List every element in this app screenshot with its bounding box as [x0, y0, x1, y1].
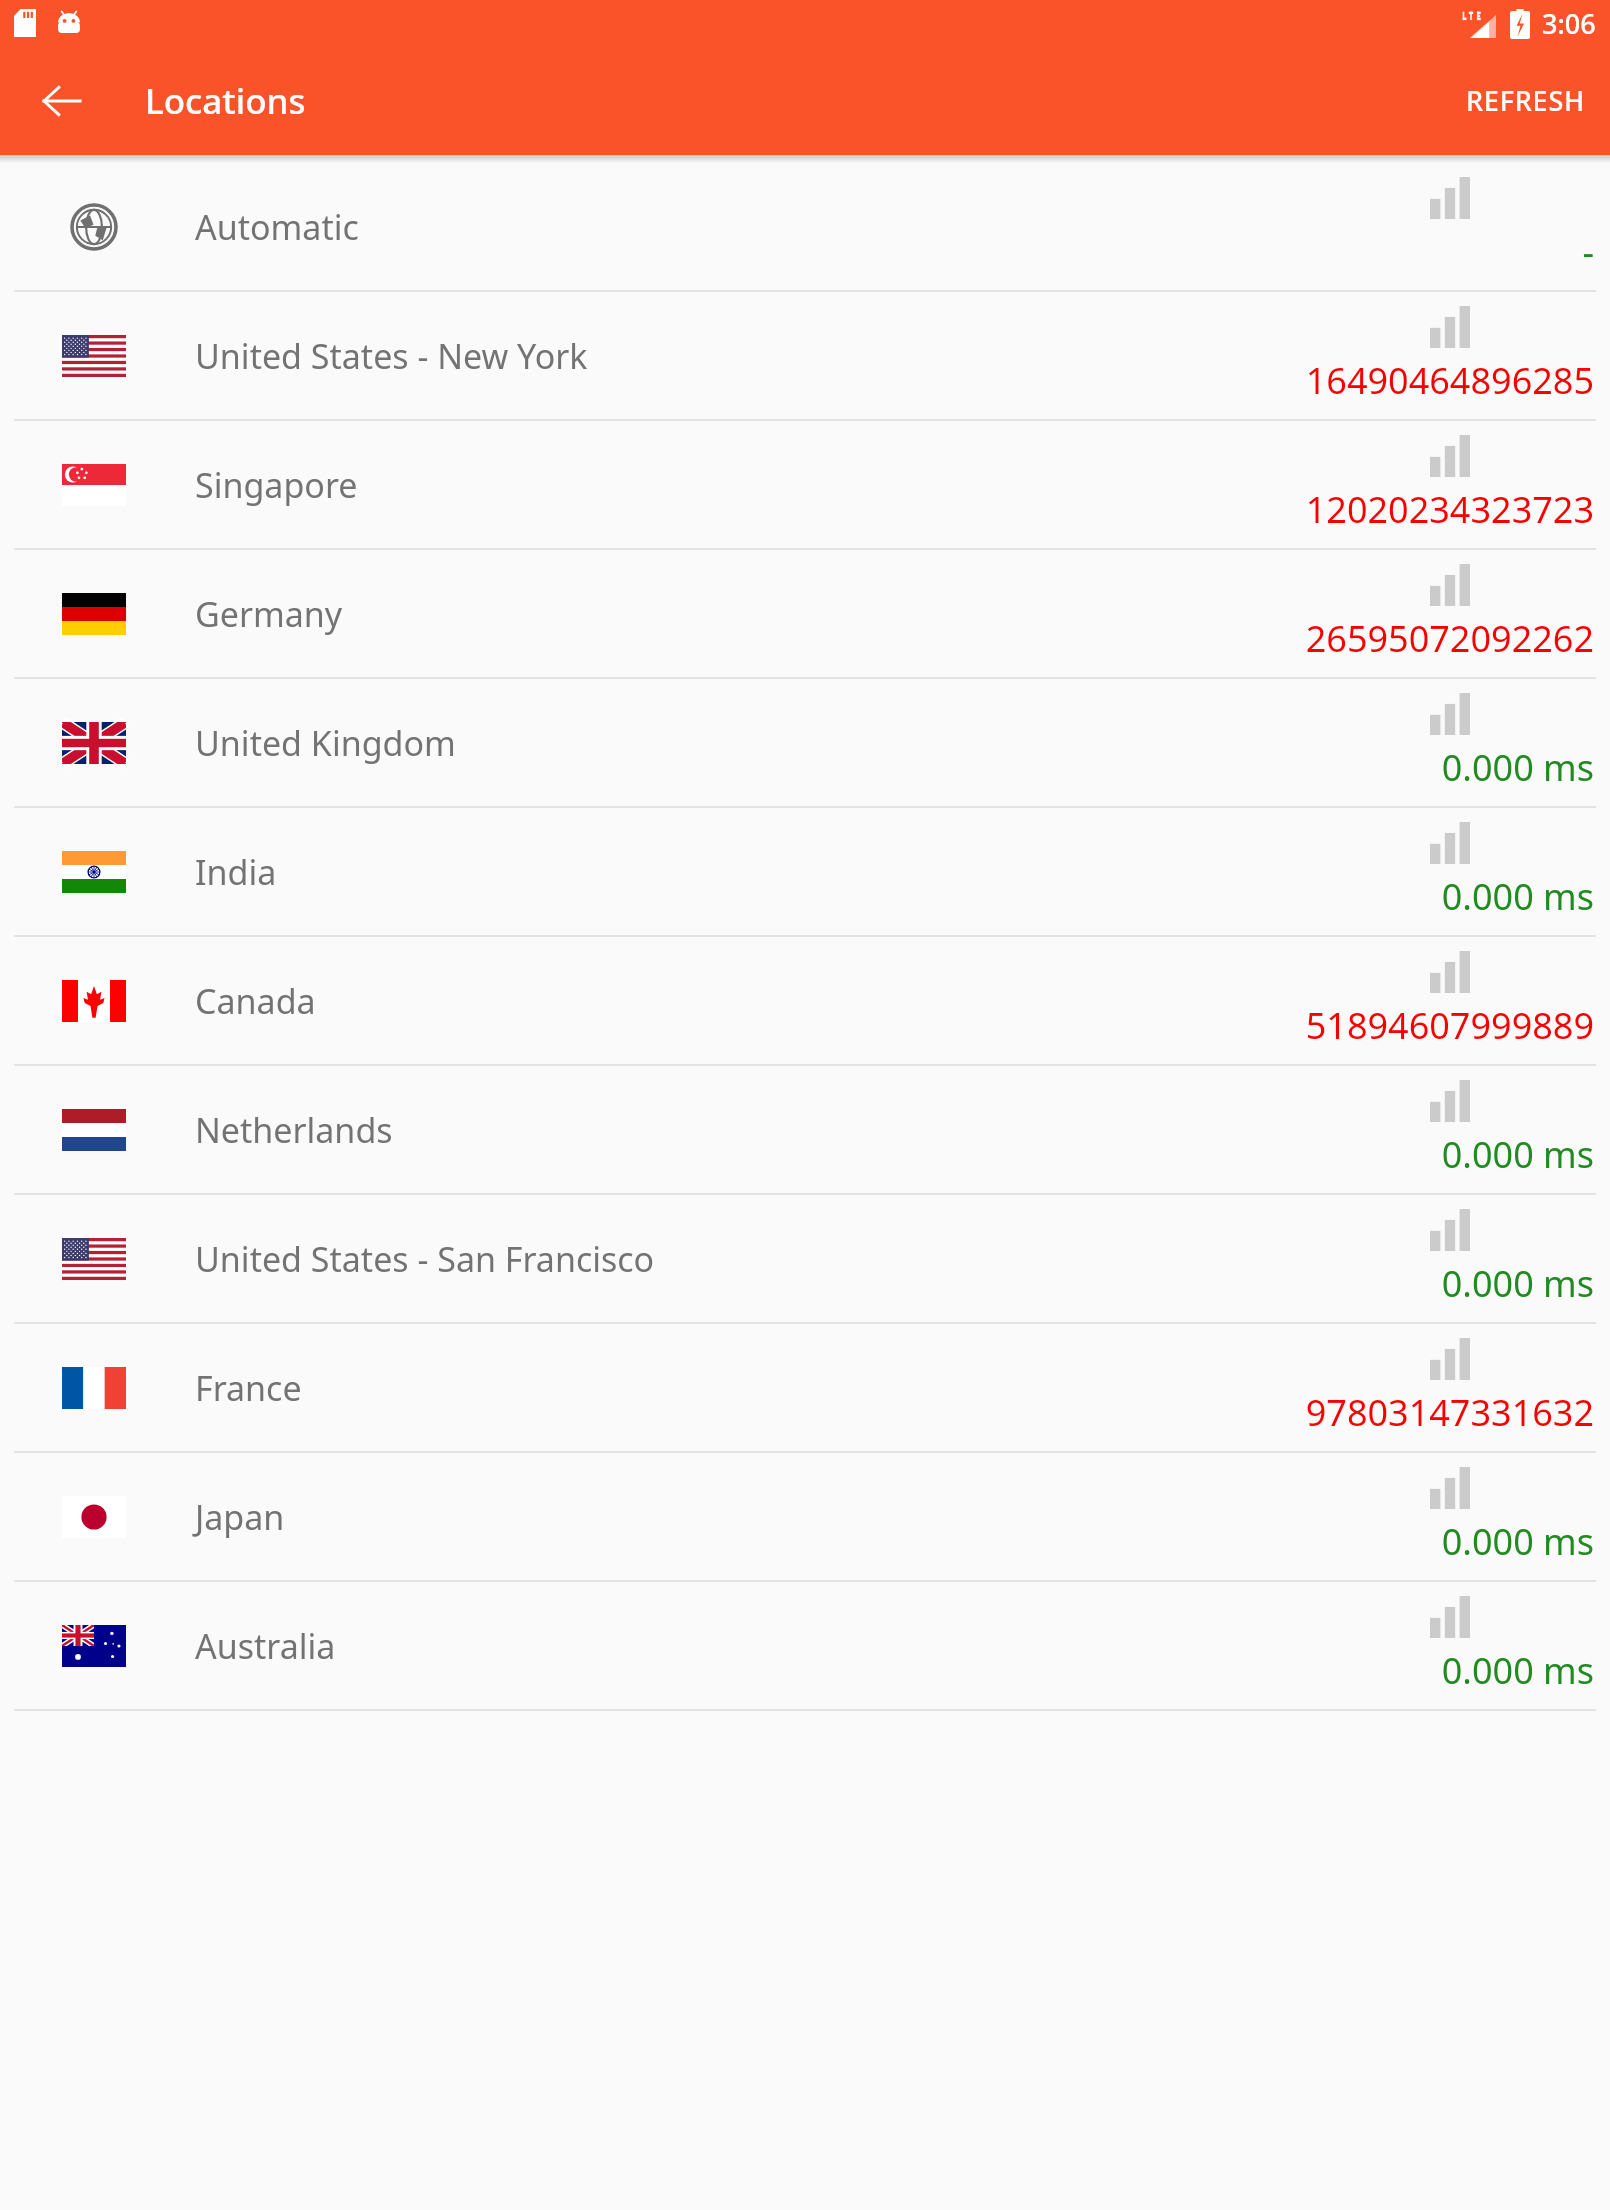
- staticText: 0.000 ms: [1441, 743, 1594, 792]
- button[interactable]: India: [0, 808, 1610, 935]
- staticText: India: [195, 849, 277, 895]
- staticText: United Kingdom: [195, 720, 456, 766]
- staticText: 16490464896285: [1305, 356, 1594, 405]
- button[interactable]: Japan: [0, 1453, 1610, 1580]
- staticText: -: [1582, 227, 1594, 276]
- button[interactable]: Germany: [0, 550, 1610, 677]
- staticText: 0.000 ms: [1441, 1517, 1594, 1566]
- staticText: United States - San Francisco: [195, 1236, 655, 1282]
- staticText: Netherlands: [195, 1107, 393, 1153]
- staticText: 26595072092262: [1305, 614, 1594, 663]
- staticText: REFRESH: [1466, 82, 1586, 119]
- button[interactable]: United States - San Francisco: [0, 1195, 1610, 1322]
- button[interactable]: Back: [24, 63, 100, 139]
- staticText: 0.000 ms: [1441, 1259, 1594, 1308]
- button[interactable]: Automatic: [0, 163, 1610, 290]
- staticText: 0.000 ms: [1441, 1130, 1594, 1179]
- button[interactable]: Canada: [0, 937, 1610, 1064]
- staticText: 51894607999889: [1305, 1001, 1594, 1050]
- staticText: Germany: [195, 591, 343, 637]
- staticText: 3:06: [1542, 5, 1596, 42]
- staticText: 12020234323723: [1305, 485, 1594, 534]
- button[interactable]: Singapore: [0, 421, 1610, 548]
- staticText: France: [195, 1365, 302, 1411]
- button[interactable]: REFRESH: [1442, 60, 1610, 141]
- staticText: Canada: [195, 978, 316, 1024]
- button[interactable]: Netherlands: [0, 1066, 1610, 1193]
- staticText: 0.000 ms: [1441, 872, 1594, 921]
- button[interactable]: Australia: [0, 1582, 1610, 1709]
- staticText: Singapore: [195, 462, 358, 508]
- staticText: Locations: [145, 77, 306, 125]
- staticText: Automatic: [195, 204, 359, 250]
- staticText: United States - New York: [195, 333, 588, 379]
- button[interactable]: United Kingdom: [0, 679, 1610, 806]
- staticText: Japan: [195, 1494, 285, 1540]
- staticText: Australia: [195, 1623, 336, 1669]
- staticText: 0.000 ms: [1441, 1646, 1594, 1695]
- staticText: 97803147331632: [1305, 1388, 1594, 1437]
- button[interactable]: United States - New York: [0, 292, 1610, 419]
- button[interactable]: France: [0, 1324, 1610, 1451]
